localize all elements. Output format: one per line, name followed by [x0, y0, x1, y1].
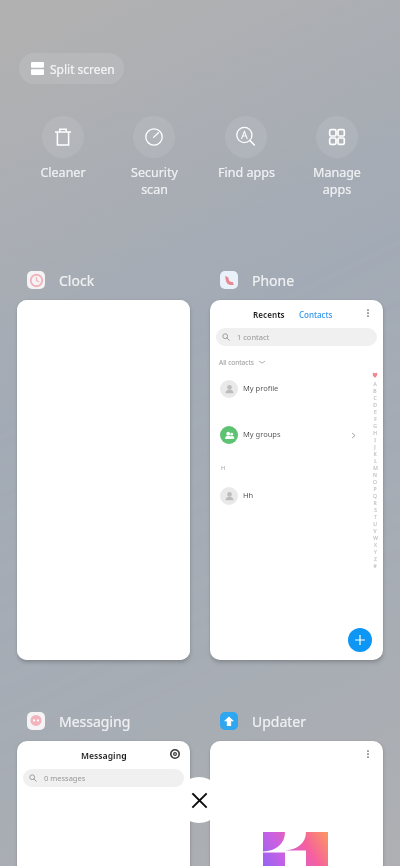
- staticText: S: [374, 507, 377, 514]
- staticText: C: [373, 395, 377, 402]
- button[interactable]: Cleaner: [18, 116, 108, 181]
- staticText: R: [373, 500, 377, 507]
- staticText: Clock: [59, 271, 95, 290]
- button[interactable]: More options: [360, 746, 376, 762]
- button[interactable]: Updater: [220, 709, 307, 733]
- staticText: Hh: [243, 490, 254, 500]
- button[interactable]: Contacts: [299, 306, 333, 322]
- staticText: B: [373, 388, 377, 395]
- button[interactable]: More options: [210, 741, 383, 866]
- staticText: All contacts: [219, 358, 254, 367]
- staticText: I: [374, 437, 376, 444]
- button[interactable]: Find apps: [201, 116, 291, 181]
- button[interactable]: Clock: [27, 268, 95, 292]
- staticText: Manage apps: [313, 164, 361, 198]
- button[interactable]: Phone: [220, 268, 295, 292]
- staticText: N: [373, 472, 377, 479]
- staticText: E: [374, 409, 377, 416]
- staticText: J: [374, 444, 376, 451]
- staticText: Y: [374, 549, 377, 556]
- staticText: #: [373, 563, 377, 570]
- staticText: A: [373, 381, 377, 388]
- button[interactable]: 1 contact: [216, 328, 377, 346]
- button[interactable]: Settings: [167, 746, 183, 762]
- button[interactable]: Security scan: [109, 116, 199, 198]
- staticText: O: [373, 479, 377, 486]
- staticText: Split screen: [50, 61, 115, 77]
- staticText: V: [373, 528, 377, 535]
- staticText: Find apps: [218, 164, 275, 181]
- button[interactable]: My profile: [220, 380, 375, 398]
- staticText: Recents: [253, 309, 285, 320]
- staticText: My profile: [243, 383, 279, 393]
- staticText: T: [374, 514, 377, 521]
- staticText: W: [373, 535, 378, 542]
- button[interactable]: Split screen: [19, 53, 124, 84]
- button[interactable]: Recents: [253, 306, 285, 322]
- staticText: Phone: [252, 271, 295, 290]
- staticText: M: [373, 465, 378, 472]
- button[interactable]: My groups: [220, 426, 375, 444]
- button[interactable]: 0 messages: [23, 769, 184, 787]
- staticText: Contacts: [299, 309, 333, 320]
- staticText: H: [373, 430, 377, 437]
- button[interactable]: Messaging: [17, 741, 190, 866]
- staticText: K: [373, 451, 377, 458]
- staticText: 0 messages: [44, 773, 86, 783]
- button[interactable]: All contacts: [219, 355, 265, 369]
- staticText: 1 contact: [237, 332, 270, 342]
- button[interactable]: Alphabet index: [370, 372, 380, 570]
- staticText: Security scan: [131, 164, 178, 198]
- staticText: H: [221, 464, 226, 472]
- staticText: Z: [374, 556, 377, 563]
- button[interactable]: Add contact: [348, 628, 372, 652]
- staticText: G: [373, 423, 377, 430]
- button[interactable]: Hh: [220, 487, 375, 505]
- button[interactable]: Recents: [210, 300, 383, 660]
- staticText: Cleaner: [40, 164, 86, 181]
- staticText: Updater: [252, 712, 307, 731]
- button[interactable]: Messaging: [27, 709, 131, 733]
- button[interactable]: Close all: [176, 777, 222, 823]
- staticText: U: [373, 521, 377, 528]
- button[interactable]: [17, 300, 190, 660]
- staticText: Q: [373, 493, 377, 500]
- staticText: X: [374, 542, 377, 549]
- staticText: F: [374, 416, 377, 423]
- button[interactable]: More options: [360, 305, 376, 321]
- staticText: D: [373, 402, 377, 409]
- staticText: My groups: [243, 429, 281, 439]
- button[interactable]: Manage apps: [292, 116, 382, 198]
- staticText: P: [373, 486, 377, 493]
- staticText: L: [374, 458, 377, 465]
- staticText: Messaging: [59, 712, 131, 731]
- staticText: Messaging: [81, 750, 127, 762]
